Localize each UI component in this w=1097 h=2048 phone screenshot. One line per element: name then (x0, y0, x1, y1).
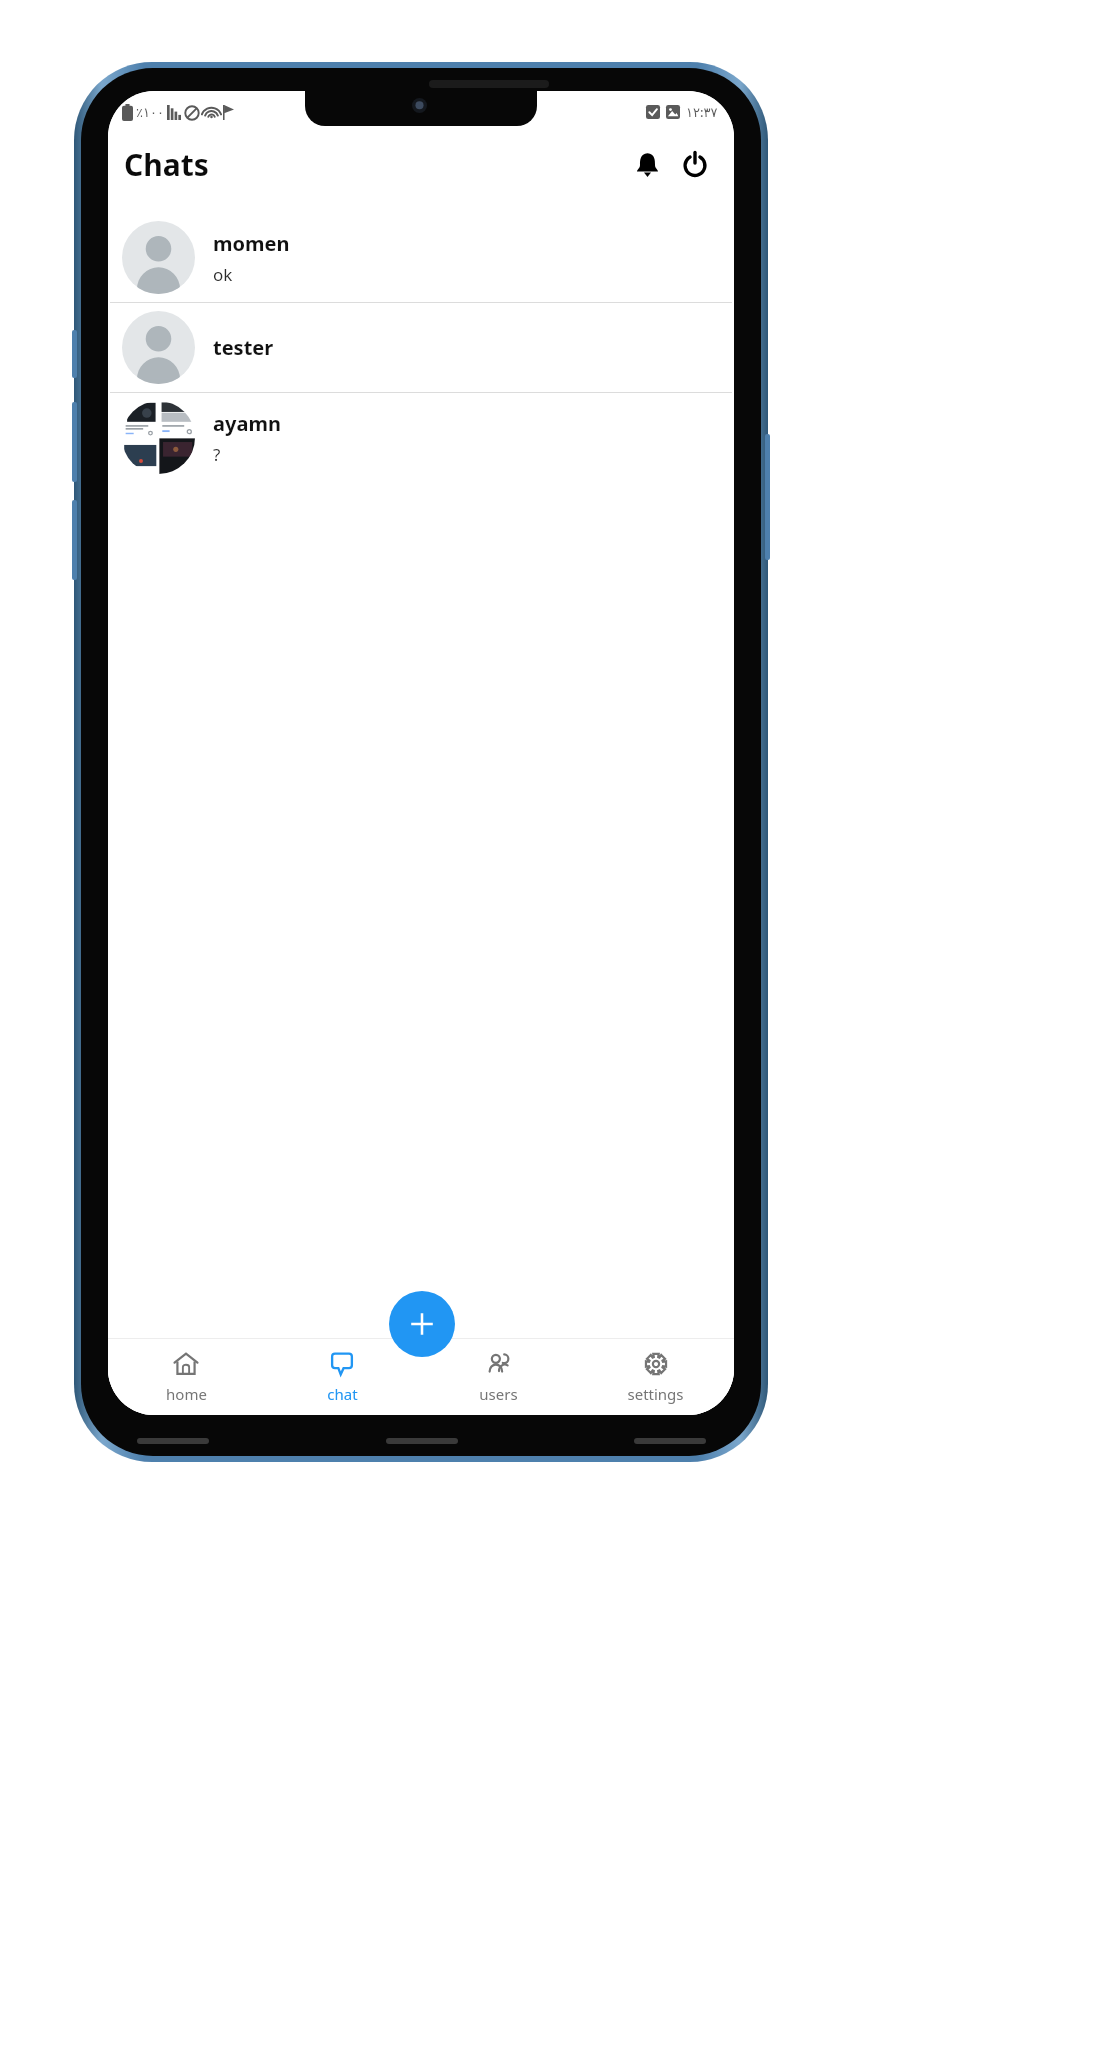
button[interactable]: home (108, 1339, 264, 1415)
button[interactable]: ayamn (108, 393, 734, 482)
staticText: settings (627, 1384, 684, 1404)
button[interactable]: Notifications (626, 143, 668, 185)
button[interactable]: tester (108, 303, 734, 392)
button[interactable]: users (420, 1339, 577, 1415)
staticText: ayamn (213, 410, 281, 437)
staticText: ٪١٠٠ (136, 105, 164, 120)
staticText: ? (213, 443, 221, 466)
staticText: Chats (124, 144, 209, 185)
button[interactable]: Logout (674, 143, 716, 185)
button[interactable]: settings (577, 1339, 734, 1415)
staticText: users (479, 1384, 518, 1404)
staticText: home (166, 1384, 207, 1404)
staticText: ok (213, 263, 233, 286)
staticText: chat (327, 1384, 358, 1404)
staticText: tester (213, 334, 274, 361)
button[interactable]: chat (264, 1339, 420, 1415)
button[interactable]: New chat (389, 1291, 455, 1357)
staticText: momen (213, 230, 290, 257)
staticText: ١٢:٣٧ (686, 103, 718, 121)
button[interactable]: momen (108, 213, 734, 302)
